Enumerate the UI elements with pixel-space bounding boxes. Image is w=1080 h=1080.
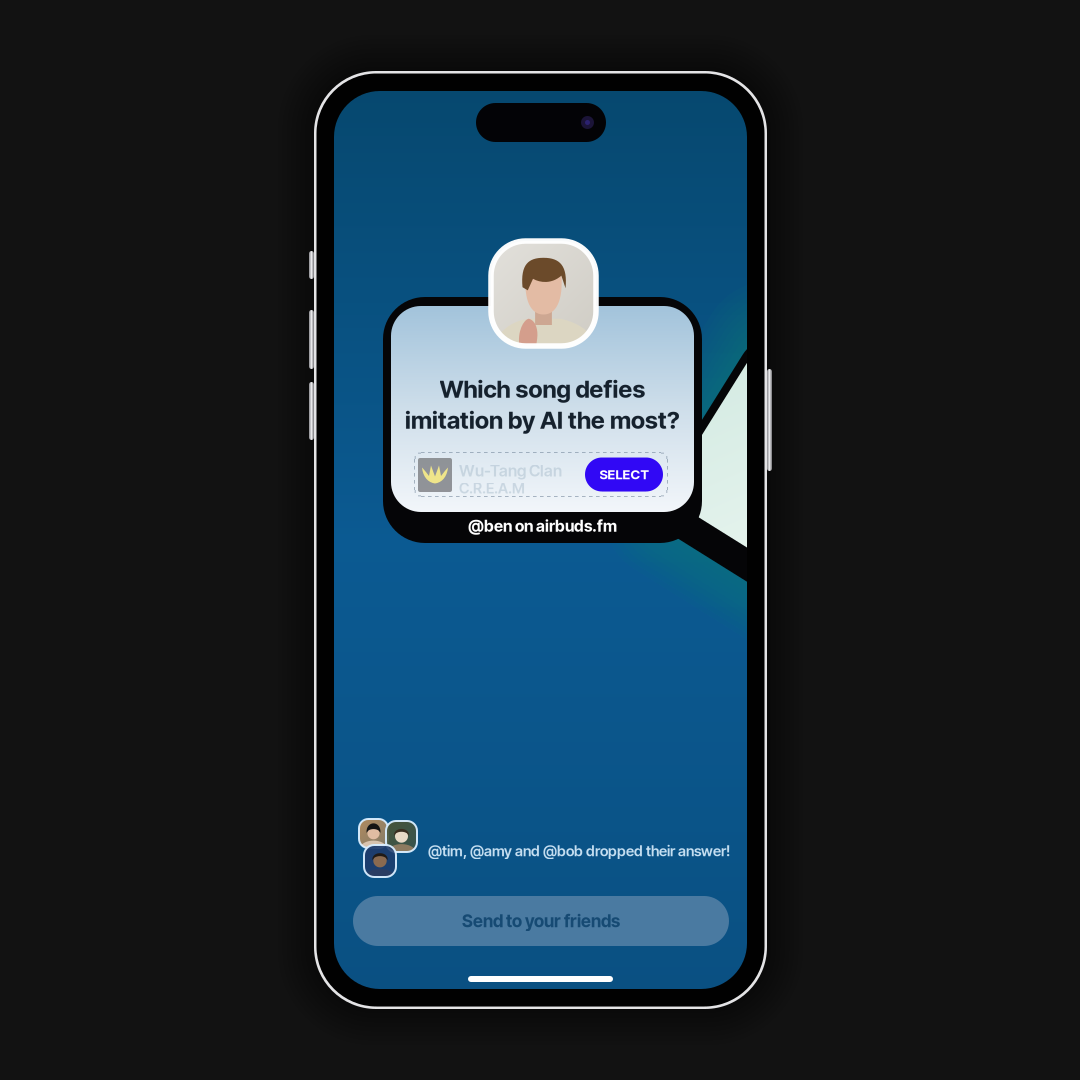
staticText: Which song defies: [439, 374, 645, 403]
button[interactable]: Send to your friends: [353, 896, 729, 946]
staticText: imitation by AI the most?: [405, 405, 680, 434]
staticText: SELECT: [599, 466, 648, 482]
button[interactable]: SELECT: [585, 457, 663, 491]
staticText: Send to your friends: [462, 910, 620, 931]
staticText: Wu-Tang Clan: [459, 461, 562, 480]
staticText: C.R.E.A.M: [459, 479, 525, 497]
staticText: @tim, @amy and @bob dropped their answer…: [428, 842, 730, 860]
staticText: @ben on airbuds.fm: [468, 516, 617, 536]
